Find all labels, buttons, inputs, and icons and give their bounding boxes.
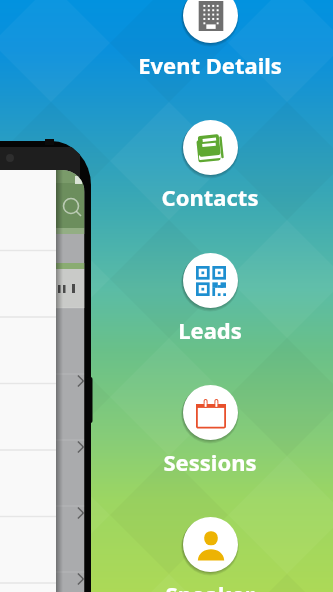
staticText: Contacts — [130, 182, 290, 214]
button[interactable]: Sessions — [130, 382, 290, 477]
staticText: Sessions — [130, 447, 290, 479]
button[interactable]: Contacts — [130, 117, 290, 212]
button[interactable]: Leads — [130, 250, 290, 345]
button[interactable]: Event Details — [130, 0, 290, 80]
staticText: Leads — [130, 315, 290, 347]
button[interactable]: Speaker — [130, 514, 290, 592]
staticText: Event Details — [130, 50, 290, 82]
staticText: Speaker — [130, 579, 290, 592]
